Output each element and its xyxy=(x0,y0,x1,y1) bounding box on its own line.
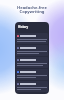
staticText: Headache-free Copywriting xyxy=(17,5,47,15)
button[interactable] xyxy=(16,69,48,80)
button[interactable] xyxy=(16,33,48,44)
button[interactable] xyxy=(16,57,48,68)
button[interactable] xyxy=(16,81,48,92)
staticText: History xyxy=(18,25,29,29)
button[interactable] xyxy=(16,45,48,56)
